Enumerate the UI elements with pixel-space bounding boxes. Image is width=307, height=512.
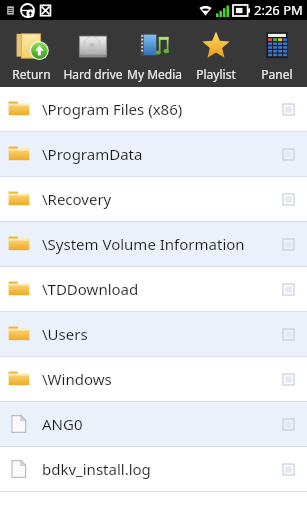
staticText: Panel [261, 66, 293, 82]
button[interactable]: \Windows [0, 357, 307, 401]
button[interactable]: Select \ProgramData [277, 143, 299, 165]
staticText: \Recovery [42, 189, 277, 209]
button[interactable]: Select \Recovery [277, 188, 299, 210]
button[interactable]: Hard drive [62, 20, 124, 87]
button[interactable]: Select bdkv_install.log [277, 458, 299, 480]
staticText: 2:26 PM [254, 1, 303, 19]
button[interactable]: ANG0 [0, 402, 307, 446]
button[interactable]: Panel [246, 20, 307, 87]
button[interactable]: Playlist [185, 20, 246, 87]
staticText: \Users [42, 324, 277, 344]
button[interactable]: \Program Files (x86) [0, 87, 307, 131]
button[interactable]: \Recovery [0, 177, 307, 221]
button[interactable]: Select \TDDownload [277, 278, 299, 300]
button[interactable]: \System Volume Information [0, 222, 307, 266]
button[interactable]: \Users [0, 312, 307, 356]
staticText: My Media [127, 66, 182, 82]
staticText: \System Volume Information [42, 234, 277, 254]
staticText: \ProgramData [42, 144, 277, 164]
button[interactable]: Return [0, 20, 62, 87]
button[interactable]: bdkv_install.log [0, 447, 307, 491]
staticText: bdkv_install.log [42, 459, 277, 479]
button[interactable]: Select ANG0 [277, 413, 299, 435]
button[interactable]: \ProgramData [0, 132, 307, 176]
button[interactable]: My Media [124, 20, 185, 87]
staticText: ANG0 [42, 414, 277, 434]
staticText: \Windows [42, 369, 277, 389]
staticText: \Program Files (x86) [42, 99, 277, 119]
button[interactable]: Select \Windows [277, 368, 299, 390]
button[interactable]: Select \System Volume Information [277, 233, 299, 255]
staticText: Hard drive [63, 66, 123, 82]
staticText: Return [12, 66, 51, 82]
button[interactable]: Select \Program Files (x86) [277, 98, 299, 120]
button[interactable]: Select \Users [277, 323, 299, 345]
staticText: Playlist [196, 66, 236, 82]
button[interactable]: \TDDownload [0, 267, 307, 311]
staticText: \TDDownload [42, 279, 277, 299]
